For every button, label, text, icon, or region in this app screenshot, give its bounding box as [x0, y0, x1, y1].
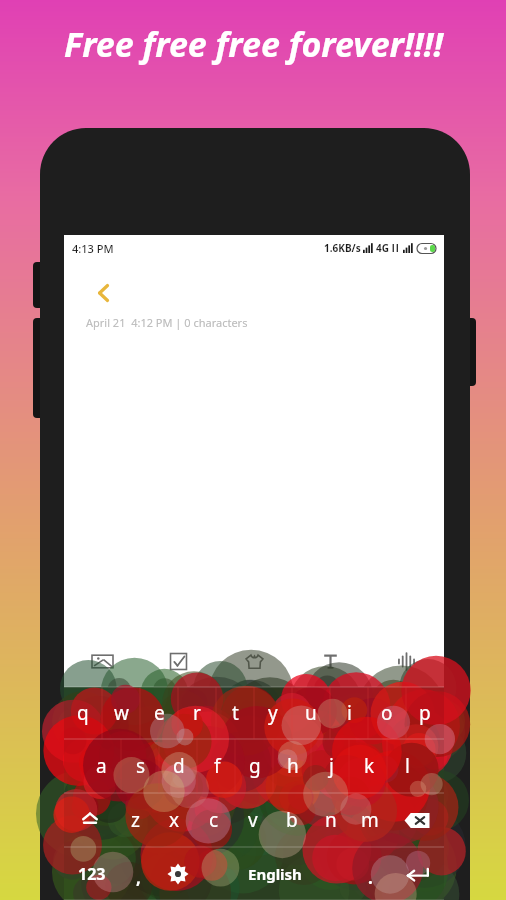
- staticText: r: [193, 700, 201, 726]
- staticText: l: [405, 753, 410, 779]
- staticText: 123: [78, 863, 106, 885]
- button[interactable]: Voice: [368, 635, 444, 687]
- button[interactable]: q: [64, 687, 102, 739]
- button[interactable]: u: [292, 687, 330, 739]
- staticText: j: [329, 753, 334, 779]
- button[interactable]: v: [233, 793, 272, 847]
- staticText: b: [286, 807, 298, 833]
- button[interactable]: Text style: [292, 635, 368, 687]
- button[interactable]: d: [160, 739, 198, 793]
- staticText: c: [209, 807, 219, 833]
- button[interactable]: Keyboard settings: [157, 847, 199, 900]
- staticText: g: [249, 753, 261, 779]
- button[interactable]: Checklist: [140, 635, 216, 687]
- staticText: z: [131, 807, 140, 833]
- button[interactable]: Insert image: [64, 635, 140, 687]
- staticText: Free free free forever!!!!: [64, 21, 443, 67]
- button[interactable]: l: [388, 739, 426, 793]
- button[interactable]: y: [254, 687, 292, 739]
- button[interactable]: Back: [84, 273, 124, 313]
- staticText: x: [169, 807, 180, 833]
- button[interactable]: g: [236, 739, 274, 793]
- button[interactable]: i: [330, 687, 368, 739]
- staticText: d: [173, 753, 185, 779]
- staticText: s: [136, 753, 146, 779]
- button[interactable]: r: [178, 687, 216, 739]
- button[interactable]: c: [194, 793, 233, 847]
- staticText: .: [368, 866, 373, 889]
- button[interactable]: ,: [119, 847, 157, 900]
- button[interactable]: English: [199, 847, 351, 900]
- button[interactable]: Sticker: [216, 635, 292, 687]
- button[interactable]: Shift: [64, 793, 116, 847]
- staticText: k: [364, 753, 375, 779]
- button[interactable]: f: [198, 739, 236, 793]
- button[interactable]: x: [155, 793, 194, 847]
- button[interactable]: k: [350, 739, 388, 793]
- staticText: 4:13 PM: [72, 241, 114, 256]
- staticText: q: [77, 700, 89, 726]
- button[interactable]: n: [311, 793, 350, 847]
- staticText: h: [287, 753, 299, 779]
- button[interactable]: j: [312, 739, 350, 793]
- staticText: ,: [136, 866, 141, 889]
- staticText: e: [154, 700, 165, 726]
- button[interactable]: e: [140, 687, 178, 739]
- staticText: English: [248, 864, 302, 884]
- button[interactable]: Backspace: [389, 793, 444, 847]
- staticText: y: [268, 700, 278, 726]
- staticText: v: [248, 807, 258, 833]
- button[interactable]: m: [350, 793, 389, 847]
- staticText: n: [325, 807, 337, 833]
- button[interactable]: h: [274, 739, 312, 793]
- button[interactable]: .: [351, 847, 389, 900]
- button[interactable]: a: [82, 739, 121, 793]
- staticText: April 21 4:12 PM | 0 characters: [86, 315, 248, 330]
- button[interactable]: s: [121, 739, 160, 793]
- staticText: u: [305, 700, 317, 726]
- staticText: 1.6KB/s: [324, 241, 361, 255]
- button[interactable]: Enter: [389, 847, 444, 900]
- staticText: m: [361, 807, 379, 833]
- staticText: a: [96, 753, 107, 779]
- staticText: i: [347, 700, 352, 726]
- button[interactable]: t: [216, 687, 254, 739]
- button[interactable]: z: [116, 793, 155, 847]
- button[interactable]: b: [272, 793, 311, 847]
- button[interactable]: 123: [64, 847, 119, 900]
- staticText: w: [114, 700, 129, 726]
- button[interactable]: w: [102, 687, 140, 739]
- staticText: o: [381, 700, 393, 726]
- staticText: 4G: [376, 241, 389, 255]
- staticText: t: [232, 700, 239, 726]
- button[interactable]: p: [406, 687, 444, 739]
- staticText: p: [419, 700, 431, 726]
- button[interactable]: o: [368, 687, 406, 739]
- staticText: f: [214, 753, 221, 779]
